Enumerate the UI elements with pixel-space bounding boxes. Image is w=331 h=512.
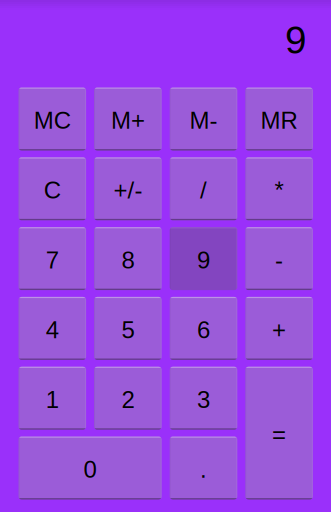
staticText: + bbox=[272, 316, 286, 343]
staticText: C bbox=[44, 177, 61, 204]
button[interactable]: 4 bbox=[18, 297, 86, 360]
button[interactable]: / bbox=[170, 157, 237, 220]
staticText: 0 bbox=[84, 456, 97, 483]
staticText: = bbox=[272, 421, 286, 448]
button[interactable]: C bbox=[18, 157, 86, 220]
staticText: 5 bbox=[121, 316, 134, 343]
button[interactable]: 8 bbox=[94, 227, 162, 290]
button[interactable]: 0 bbox=[18, 436, 162, 499]
button[interactable]: MR bbox=[245, 87, 313, 150]
button[interactable]: M+ bbox=[94, 87, 162, 150]
button[interactable]: * bbox=[245, 157, 313, 220]
staticText: 2 bbox=[121, 386, 134, 413]
staticText: . bbox=[200, 456, 207, 483]
staticText: - bbox=[275, 247, 283, 273]
staticText: +/- bbox=[113, 177, 142, 204]
button[interactable]: 9 bbox=[170, 227, 237, 290]
button[interactable]: +/- bbox=[94, 157, 162, 220]
button[interactable]: 3 bbox=[170, 367, 237, 430]
staticText: * bbox=[275, 177, 284, 204]
button[interactable]: 2 bbox=[94, 367, 162, 430]
staticText: 9 bbox=[197, 247, 210, 273]
button[interactable]: = bbox=[245, 367, 313, 499]
button[interactable]: M- bbox=[170, 87, 237, 150]
staticText: / bbox=[200, 177, 207, 204]
staticText: 4 bbox=[46, 316, 59, 343]
button[interactable]: 1 bbox=[18, 367, 86, 430]
staticText: 7 bbox=[46, 247, 59, 273]
staticText: 3 bbox=[197, 386, 210, 413]
button[interactable]: MC bbox=[18, 87, 86, 150]
staticText: 8 bbox=[121, 247, 134, 273]
staticText: 9 bbox=[285, 19, 307, 62]
button[interactable]: - bbox=[245, 227, 313, 290]
staticText: 1 bbox=[46, 386, 59, 413]
staticText: MC bbox=[34, 107, 71, 134]
button[interactable]: 6 bbox=[170, 297, 237, 360]
staticText: M- bbox=[189, 107, 217, 134]
staticText: M+ bbox=[111, 107, 145, 134]
staticText: 6 bbox=[197, 316, 210, 343]
button[interactable]: 7 bbox=[18, 227, 86, 290]
button[interactable]: 5 bbox=[94, 297, 162, 360]
button[interactable]: . bbox=[170, 436, 237, 499]
staticText: MR bbox=[261, 107, 298, 134]
button[interactable]: + bbox=[245, 297, 313, 360]
